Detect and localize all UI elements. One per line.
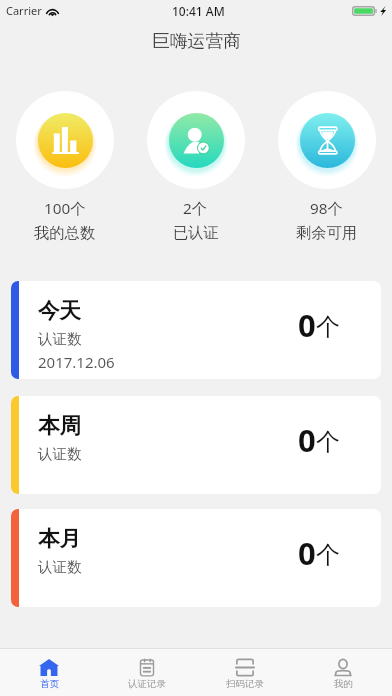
button[interactable]: 扫码记录 <box>196 649 294 696</box>
staticText: 扫码记录 <box>226 678 264 690</box>
button[interactable]: 今天 <box>11 281 381 379</box>
staticText: Carrier <box>6 3 42 18</box>
button[interactable]: 首页 <box>0 649 98 696</box>
staticText: 0 <box>298 532 316 574</box>
button[interactable]: 100个 <box>0 91 130 242</box>
staticText: 0 <box>298 419 316 461</box>
staticText: 个 <box>316 540 340 570</box>
staticText: 个 <box>316 427 340 457</box>
staticText: 0 <box>298 304 316 346</box>
staticText: 我的 <box>334 678 353 690</box>
staticText: 我的总数 <box>34 223 96 242</box>
button[interactable]: 我的 <box>294 649 392 696</box>
staticText: 认证数 <box>38 558 82 576</box>
staticText: 2个 <box>183 198 208 219</box>
button[interactable]: 本月 <box>11 509 381 607</box>
button[interactable]: 本周 <box>11 396 381 494</box>
staticText: 98个 <box>310 198 343 219</box>
staticText: 已认证 <box>173 223 219 242</box>
staticText: 剩余可用 <box>296 223 358 242</box>
staticText: 认证数 <box>38 445 82 463</box>
staticText: 100个 <box>44 198 86 219</box>
staticText: 今天 <box>38 297 81 324</box>
button[interactable]: 2个 <box>130 91 261 242</box>
staticText: 认证记录 <box>128 678 166 690</box>
staticText: 巨嗨运营商 <box>152 30 241 52</box>
staticText: 本周 <box>38 412 81 439</box>
staticText: 首页 <box>40 678 59 690</box>
staticText: 10:41 AM <box>172 3 225 19</box>
button[interactable]: 认证记录 <box>98 649 196 696</box>
staticText: 2017.12.06 <box>38 352 115 372</box>
staticText: 本月 <box>38 525 81 552</box>
button[interactable]: 98个 <box>261 91 392 242</box>
staticText: 个 <box>316 312 340 342</box>
staticText: 认证数 <box>38 330 82 348</box>
